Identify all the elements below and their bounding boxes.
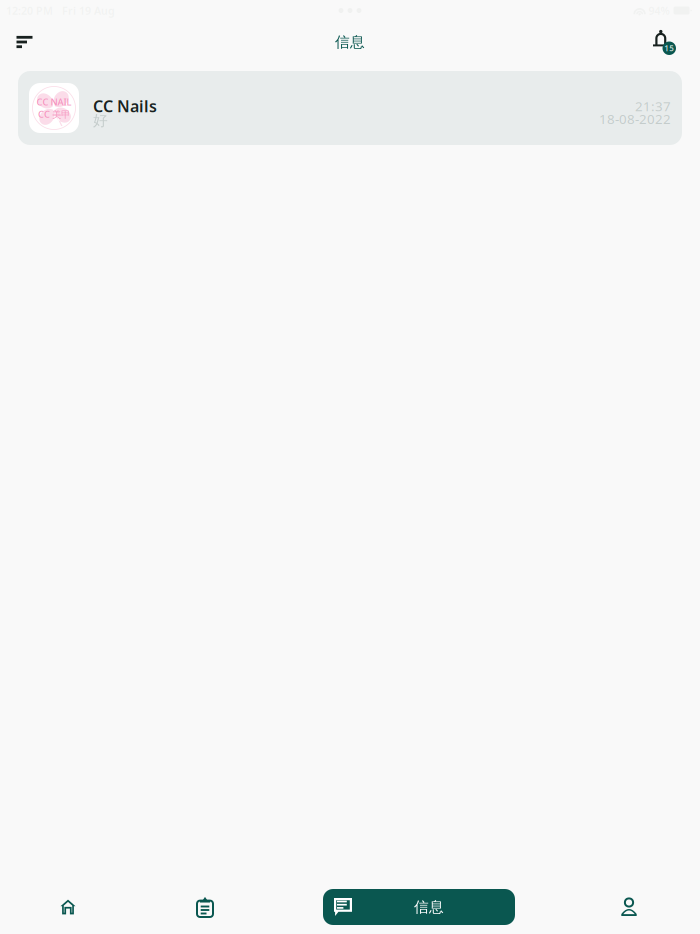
button[interactable]: Home bbox=[35, 884, 101, 930]
staticText: 好 bbox=[93, 112, 108, 130]
staticText: 21:37 bbox=[635, 97, 671, 115]
button[interactable]: Profile bbox=[596, 884, 662, 930]
staticText: 18-08-2022 bbox=[599, 110, 671, 128]
button[interactable]: Notifications bbox=[643, 21, 687, 63]
staticText: 信息 bbox=[335, 33, 365, 51]
button[interactable]: Sort bbox=[0, 21, 49, 63]
staticText: CC NAIL bbox=[36, 96, 71, 108]
button[interactable]: Orders bbox=[172, 884, 238, 930]
staticText: 15 bbox=[664, 43, 674, 53]
button[interactable]: CC NAIL bbox=[18, 71, 682, 145]
staticText: CC 美甲 bbox=[38, 108, 70, 120]
staticText: 信息 bbox=[414, 898, 444, 916]
staticText: CC Nails bbox=[93, 95, 157, 117]
button[interactable]: 信息 bbox=[323, 889, 515, 925]
